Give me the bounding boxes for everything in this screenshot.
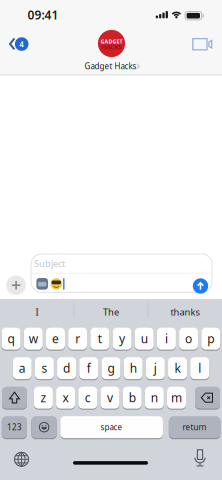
staticText: r [75, 331, 80, 347]
button[interactable]: thanks [148, 298, 221, 326]
staticText: 123 [7, 422, 22, 432]
staticText: m [171, 390, 182, 406]
staticText: i [165, 331, 168, 347]
button[interactable]: v [100, 387, 119, 410]
staticText: q [8, 331, 15, 347]
button[interactable]: 123 [2, 416, 27, 439]
button[interactable]: Shift [2, 387, 27, 410]
staticText: HACKS [101, 43, 122, 51]
staticText: h [130, 360, 137, 376]
button[interactable]: x [56, 387, 75, 410]
staticText: g [107, 360, 114, 376]
button[interactable]: d [57, 357, 76, 380]
button[interactable]: o [179, 328, 198, 351]
staticText: space [101, 422, 123, 432]
button[interactable]: p [201, 328, 220, 351]
button[interactable]: More options [5, 274, 27, 296]
staticText: b [129, 390, 136, 406]
staticText: f [87, 360, 91, 376]
staticText: d [63, 360, 70, 376]
button[interactable]: The [74, 298, 147, 326]
staticText: Subject [34, 257, 65, 269]
staticText: e [52, 331, 59, 347]
staticText: s [41, 360, 47, 376]
button[interactable]: e [46, 328, 65, 351]
staticText: a [19, 360, 26, 376]
staticText: v [107, 390, 113, 406]
button[interactable]: space [60, 416, 163, 439]
staticText: w [29, 331, 38, 347]
button[interactable]: h [124, 357, 143, 380]
staticText: j [154, 360, 157, 376]
button[interactable]: m [167, 387, 186, 410]
button[interactable]: z [34, 387, 53, 410]
button[interactable]: Send [191, 277, 209, 295]
staticText: z [40, 390, 46, 406]
button[interactable]: i [157, 328, 176, 351]
staticText: o [185, 331, 192, 347]
staticText: 4 [19, 39, 24, 49]
button[interactable]: w [24, 328, 43, 351]
button[interactable]: Next keyboard [10, 448, 32, 470]
button[interactable]: I [0, 298, 73, 326]
button[interactable]: b [123, 387, 142, 410]
staticText: t [98, 331, 102, 347]
button[interactable]: j [146, 357, 165, 380]
button[interactable]: y [112, 328, 131, 351]
button[interactable]: q [2, 328, 21, 351]
staticText: return [183, 422, 207, 432]
staticText: n [151, 390, 158, 406]
button[interactable]: s [35, 357, 54, 380]
button[interactable]: c [78, 387, 97, 410]
button[interactable]: f [79, 357, 98, 380]
staticText: I [35, 306, 38, 318]
staticText: The [103, 306, 119, 318]
staticText: c [85, 390, 91, 406]
button[interactable]: g [101, 357, 120, 380]
button[interactable]: Emoji [31, 416, 57, 439]
button[interactable]: u [135, 328, 154, 351]
button[interactable]: a [13, 357, 32, 380]
staticText: 09:41 [27, 7, 58, 23]
button[interactable]: Message field [31, 254, 212, 292]
button[interactable]: Back [2, 36, 34, 52]
staticText: u [141, 331, 148, 347]
staticText: y [119, 331, 125, 347]
button[interactable]: Gadget Hacks conversation details [81, 26, 141, 72]
staticText: l [198, 360, 201, 376]
button[interactable]: n [145, 387, 164, 410]
button[interactable]: return [169, 416, 220, 439]
button[interactable]: Dictation [189, 447, 211, 469]
staticText: Gadget Hacks [84, 61, 136, 71]
button[interactable]: r [68, 328, 87, 351]
staticText: GADGET [100, 38, 122, 45]
button[interactable]: FaceTime video call [187, 33, 217, 55]
button[interactable]: Delete [195, 387, 220, 410]
staticText: p [207, 331, 214, 347]
staticText: k [174, 360, 180, 376]
button[interactable]: k [168, 357, 187, 380]
staticText: thanks [170, 306, 199, 318]
button[interactable]: l [190, 357, 209, 380]
staticText: x [63, 390, 69, 406]
button[interactable]: t [90, 328, 109, 351]
